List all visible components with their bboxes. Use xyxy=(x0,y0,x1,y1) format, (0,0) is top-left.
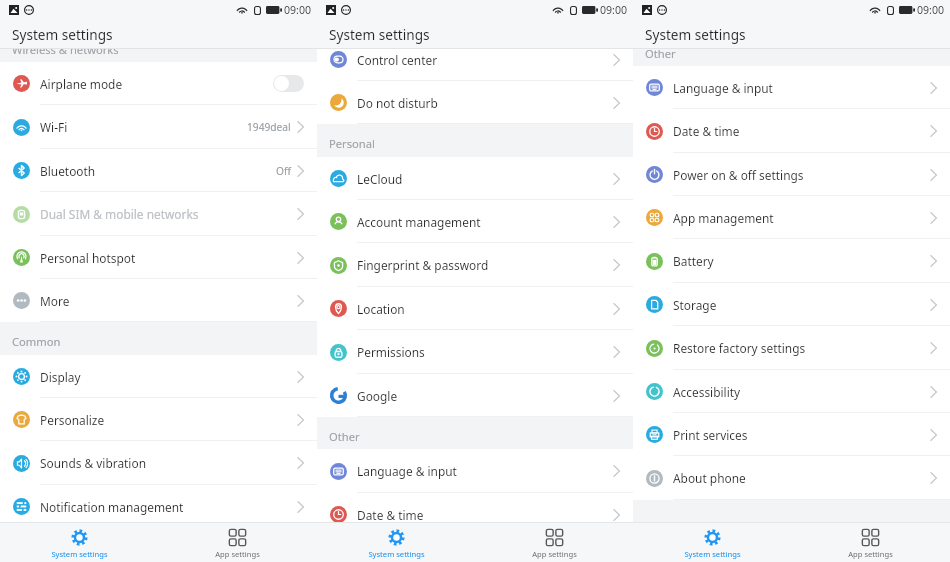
button[interactable]: Personal hotspot xyxy=(0,236,317,279)
button[interactable]: Do not disturb xyxy=(317,81,633,124)
staticText: Off xyxy=(276,164,291,178)
button[interactable]: About phone xyxy=(633,456,950,500)
button[interactable]: Personalize xyxy=(0,398,317,441)
button[interactable]: Notification management xyxy=(0,485,317,522)
button[interactable]: Language & input xyxy=(633,66,950,109)
button[interactable]: System settings xyxy=(0,523,158,562)
staticText: Battery xyxy=(673,253,714,269)
staticText: 09:00 xyxy=(284,3,312,17)
staticText: Date & time xyxy=(673,123,740,139)
staticText: App settings xyxy=(848,549,893,559)
staticText: Language & input xyxy=(357,463,457,479)
staticText: Google xyxy=(357,388,398,404)
button[interactable]: Fingerprint & password xyxy=(317,243,633,287)
staticText: System settings xyxy=(684,549,741,559)
button[interactable]: Battery xyxy=(633,239,950,283)
button[interactable]: Storage xyxy=(633,283,950,326)
button[interactable]: Location xyxy=(317,287,633,330)
staticText: System settings xyxy=(51,549,108,559)
button[interactable]: Wi-Fi xyxy=(0,105,317,149)
staticText: Wi-Fi xyxy=(40,119,68,135)
button[interactable]: Date & time xyxy=(633,109,950,153)
staticText: Restore factory settings xyxy=(673,340,806,356)
staticText: 09:00 xyxy=(600,3,628,17)
button[interactable]: Print services xyxy=(633,413,950,456)
staticText: Storage xyxy=(673,297,717,313)
button[interactable]: Language & input xyxy=(317,449,633,493)
staticText: 09:00 xyxy=(917,3,945,17)
staticText: Control center xyxy=(357,52,438,68)
staticText: Personal hotspot xyxy=(40,250,136,266)
button[interactable]: Dual SIM & mobile networks xyxy=(0,192,317,236)
button[interactable]: Display xyxy=(0,355,317,398)
staticText: Sounds & vibration xyxy=(40,455,146,471)
staticText: Notification management xyxy=(40,499,184,515)
staticText: System settings xyxy=(368,549,425,559)
staticText: App settings xyxy=(532,549,577,559)
button[interactable]: Bluetooth xyxy=(0,149,317,192)
staticText: LeCloud xyxy=(357,171,403,187)
staticText: System settings xyxy=(329,25,430,44)
button[interactable]: More xyxy=(0,279,317,322)
staticText: Personal xyxy=(329,136,375,151)
staticText: Fingerprint & password xyxy=(357,257,489,273)
staticText: Airplane mode xyxy=(40,76,123,92)
button[interactable]: App settings xyxy=(158,523,317,562)
staticText: System settings xyxy=(645,25,746,44)
staticText: Other xyxy=(329,429,360,444)
staticText: App management xyxy=(673,210,774,226)
button[interactable]: System settings xyxy=(633,523,791,562)
staticText: 1949deal xyxy=(247,120,291,134)
staticText: Personalize xyxy=(40,412,105,428)
staticText: Location xyxy=(357,301,405,317)
button[interactable]: App settings xyxy=(791,523,950,562)
button[interactable]: Permissions xyxy=(317,330,633,374)
staticText: Other xyxy=(645,48,676,61)
button[interactable]: App management xyxy=(633,196,950,239)
staticText: About phone xyxy=(673,470,746,486)
button[interactable]: App settings xyxy=(475,523,633,562)
button[interactable]: Sounds & vibration xyxy=(0,441,317,485)
staticText: Wireless & networks xyxy=(12,48,119,57)
staticText: Display xyxy=(40,369,81,385)
button[interactable]: Google xyxy=(317,374,633,417)
staticText: App settings xyxy=(215,549,260,559)
staticText: Accessibility xyxy=(673,384,741,400)
button[interactable]: Power on & off settings xyxy=(633,153,950,196)
button[interactable]: LeCloud xyxy=(317,157,633,200)
staticText: Print services xyxy=(673,427,748,443)
button[interactable]: Airplane mode xyxy=(0,62,317,105)
button[interactable]: Date & time xyxy=(317,493,633,522)
staticText: Date & time xyxy=(357,507,424,522)
staticText: Common xyxy=(12,334,61,349)
staticText: Do not disturb xyxy=(357,95,438,111)
staticText: Power on & off settings xyxy=(673,167,804,183)
staticText: Permissions xyxy=(357,344,425,360)
button[interactable]: Account management xyxy=(317,200,633,243)
staticText: Bluetooth xyxy=(40,163,96,179)
staticText: Language & input xyxy=(673,80,773,96)
button[interactable]: Accessibility xyxy=(633,370,950,413)
staticText: Dual SIM & mobile networks xyxy=(40,206,199,222)
staticText: More xyxy=(40,293,70,309)
button[interactable]: Restore factory settings xyxy=(633,326,950,370)
staticText: Account management xyxy=(357,214,481,230)
button[interactable]: Toggle xyxy=(273,75,304,92)
button[interactable]: Control center xyxy=(317,48,633,81)
staticText: System settings xyxy=(12,25,113,44)
button[interactable]: System settings xyxy=(317,523,475,562)
